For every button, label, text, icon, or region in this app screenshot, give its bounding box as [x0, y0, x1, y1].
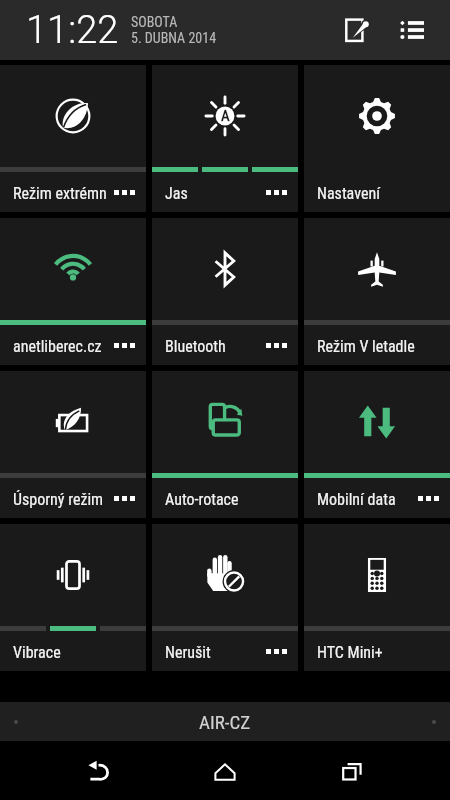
staticText: AIR-CZ — [199, 711, 251, 733]
button[interactable]: Nerušit — [152, 524, 298, 671]
staticText: Vibrace — [13, 643, 146, 662]
button[interactable]: More options — [266, 631, 287, 671]
button[interactable]: Recents — [324, 744, 380, 800]
button[interactable]: anetliberec.cz — [0, 218, 146, 365]
staticText: 11:22 — [26, 8, 119, 53]
button[interactable]: Auto-rotace — [152, 371, 298, 518]
button[interactable]: Úsporný režim — [0, 371, 146, 518]
staticText: A — [221, 107, 230, 125]
button[interactable]: Vibrace — [0, 524, 146, 671]
staticText: Nerušit — [165, 643, 298, 662]
button[interactable]: Back — [71, 744, 127, 800]
staticText: anetliberec.cz — [13, 337, 146, 356]
button[interactable]: AIR-CZ — [0, 702, 450, 741]
button[interactable]: More options — [418, 478, 439, 518]
button[interactable]: More options — [114, 172, 135, 212]
staticText: Úsporný režim — [13, 490, 146, 509]
button[interactable]: More options — [266, 325, 287, 365]
staticText: HTC Mini+ — [317, 643, 450, 662]
button[interactable]: List — [392, 10, 432, 50]
button[interactable]: Nastavení — [304, 65, 450, 212]
button[interactable]: Bluetooth — [152, 218, 298, 365]
button[interactable]: Home — [197, 744, 253, 800]
staticText: Auto-rotace — [165, 490, 298, 509]
button[interactable]: Mobilní data — [304, 371, 450, 518]
button[interactable]: More options — [266, 172, 287, 212]
button[interactable]: Režim V letadle — [304, 218, 450, 365]
staticText: Jas — [165, 184, 298, 203]
staticText: 5. DUBNA 2014 — [131, 30, 217, 46]
button[interactable]: Edit — [338, 10, 378, 50]
staticText: Mobilní data — [317, 490, 450, 509]
button[interactable]: More options — [114, 325, 135, 365]
button[interactable]: More options — [114, 478, 135, 518]
staticText: Režim V letadle — [317, 337, 450, 356]
staticText: Bluetooth — [165, 337, 298, 356]
staticText: Režim extrémn — [13, 184, 146, 203]
button[interactable]: Režim extrémn — [0, 65, 146, 212]
staticText: Nastavení — [317, 184, 450, 203]
staticText: SOBOTA — [131, 14, 178, 30]
button[interactable]: A — [152, 65, 298, 212]
button[interactable]: HTC Mini+ — [304, 524, 450, 671]
